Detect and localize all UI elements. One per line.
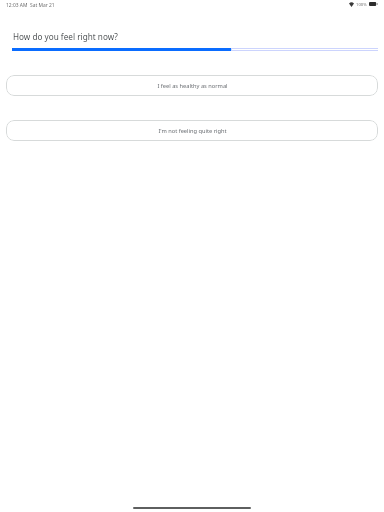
staticText: How do you feel right now? [13,31,118,42]
staticText: I feel as healthy as normal [157,82,228,90]
button[interactable]: I feel as healthy as normal [6,75,378,96]
staticText: 12:03 AM [6,2,28,9]
other: Battery full [369,2,378,6]
staticText: 100% [356,2,367,8]
button[interactable]: I'm not feeling quite right [6,120,378,141]
other: Wi-Fi connected [349,2,354,7]
staticText: I'm not feeling quite right [158,127,227,135]
staticText: Sat Mar 21 [30,2,55,9]
other: Progress: 60 percent [12,48,378,51]
